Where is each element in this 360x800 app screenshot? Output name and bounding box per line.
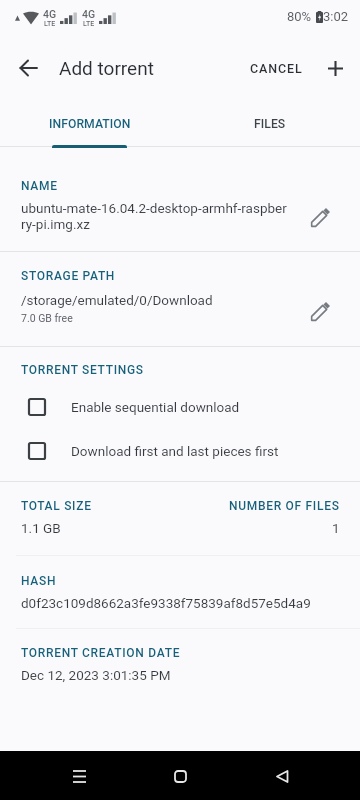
staticText: d0f23c109d8662a3fe9338f75839af8d57e5d4a9: [21, 595, 311, 611]
staticText: Download first and last pieces first: [71, 443, 279, 459]
staticText: INFORMATION: [49, 117, 131, 131]
button[interactable]: Navigate up: [4, 44, 52, 92]
staticText: 3:02: [323, 9, 349, 24]
staticText: HASH: [21, 574, 57, 588]
button[interactable]: FILES: [180, 98, 360, 150]
button[interactable]: INFORMATION: [0, 98, 180, 150]
button[interactable]: Enable sequential download: [0, 388, 360, 425]
staticText: TOTAL SIZE: [21, 499, 92, 513]
staticText: Add torrent: [59, 57, 154, 79]
staticText: 4G: [82, 8, 96, 20]
button[interactable]: Back: [259, 753, 305, 799]
staticText: LTE: [44, 20, 56, 28]
button[interactable]: Add: [311, 44, 359, 92]
staticText: Enable sequential download: [71, 399, 240, 415]
staticText: 7.0 GB free: [21, 312, 73, 324]
staticText: LTE: [83, 20, 95, 28]
staticText: Dec 12, 2023 3:01:35 PM: [21, 667, 171, 683]
staticText: FILES: [254, 117, 286, 131]
button[interactable]: CANCEL: [242, 53, 311, 84]
staticText: CANCEL: [250, 61, 303, 76]
staticText: 1.1 GB: [21, 520, 61, 536]
staticText: NAME: [21, 179, 58, 193]
button[interactable]: Home: [157, 753, 203, 799]
staticText: ry-pi.img.xz: [21, 216, 90, 232]
staticText: 80%: [287, 9, 312, 24]
staticText: NUMBER OF FILES: [229, 499, 340, 513]
staticText: TORRENT CREATION DATE: [21, 646, 181, 660]
button[interactable]: Edit: [280, 287, 360, 335]
staticText: 4G: [43, 8, 57, 20]
staticText: STORAGE PATH: [21, 269, 116, 283]
button[interactable]: Edit: [280, 193, 360, 241]
staticText: /storage/emulated/0/Download: [21, 292, 213, 308]
staticText: 1: [332, 520, 340, 536]
staticText: ubuntu-mate-16.04.2-desktop-armhf-raspbe…: [21, 200, 287, 216]
button[interactable]: Recent apps: [56, 753, 102, 799]
button[interactable]: Download first and last pieces first: [0, 432, 360, 469]
staticText: TORRENT SETTINGS: [21, 363, 144, 377]
